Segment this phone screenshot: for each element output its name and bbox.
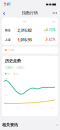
staticText: 全部 › <box>56 124 58 126</box>
staticText: 涨跌幅 <box>52 21 55 22</box>
staticText: 1/22 <box>39 106 42 108</box>
button[interactable]: 全部 › <box>56 124 58 126</box>
staticText: 1/15 <box>27 106 30 108</box>
staticText: +0.72% <box>44 28 55 32</box>
button[interactable]: More <box>51 9 57 17</box>
staticText: 1/8 <box>16 106 18 108</box>
button[interactable]: 近3月 <box>16 66 25 69</box>
staticText: › <box>54 48 55 52</box>
staticText: 上证 <box>16 73 18 75</box>
staticText: 近3月 <box>19 67 22 68</box>
staticText: ‹ <box>3 9 5 17</box>
staticText: 近1月 <box>8 67 11 68</box>
staticText: 相关资讯 <box>2 122 18 127</box>
staticText: 1/29 <box>51 106 54 108</box>
staticText: 9:41 <box>4 3 11 6</box>
button[interactable]: Back <box>3 9 9 17</box>
staticText: 1200 <box>4 102 8 104</box>
button[interactable]: 上证 <box>2 35 58 44</box>
staticText: 上证 <box>5 38 11 41</box>
button[interactable]: 恒生 <box>2 25 58 35</box>
staticText: 今日行情解读 <box>8 49 14 51</box>
staticText: 2400 <box>4 78 8 80</box>
staticText: 指数行情 <box>22 10 38 15</box>
staticText: 恒生 <box>5 29 11 32</box>
staticText: -0.42% <box>45 38 55 41</box>
staticText: 1,016.93 <box>17 37 31 42</box>
button[interactable]: 近1月 <box>5 66 14 69</box>
button[interactable]: 今日行情解读 <box>2 46 58 53</box>
staticText: 2000 <box>4 86 8 88</box>
staticText: 恒生 <box>8 73 10 75</box>
staticText: 2,315.82 <box>17 28 31 33</box>
staticText: 1/1 <box>5 106 7 108</box>
staticText: 历史走势 <box>5 58 21 63</box>
